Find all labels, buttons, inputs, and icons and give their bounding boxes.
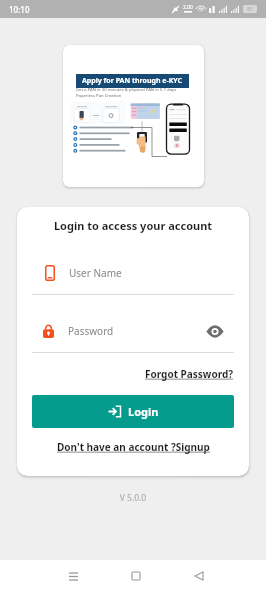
button[interactable]: Don't have an account ?Signup <box>57 440 210 454</box>
staticText: User Name <box>69 266 122 280</box>
button[interactable]: Home <box>120 560 152 592</box>
staticText: Password <box>68 324 114 338</box>
staticText: 2.00 <box>183 4 193 11</box>
button[interactable]: Forgot Password? <box>145 367 234 381</box>
staticText: 10:10 <box>9 4 30 15</box>
staticText: Get e-PAN in 30 minutes & physical PAN i… <box>76 87 177 93</box>
staticText: Login <box>128 404 159 419</box>
staticText: 85 <box>247 6 253 13</box>
button[interactable]: Show password <box>204 322 226 340</box>
staticText: Paperless Pan Creation <box>76 93 122 99</box>
staticText: Login to access your account <box>32 218 234 233</box>
button[interactable]: Login <box>32 395 234 428</box>
button[interactable]: Recent apps <box>57 560 89 592</box>
staticText: Apply for PAN through e-KYC <box>82 76 183 86</box>
button[interactable]: Back <box>183 560 215 592</box>
staticText: V 5.0.0 <box>0 492 266 504</box>
